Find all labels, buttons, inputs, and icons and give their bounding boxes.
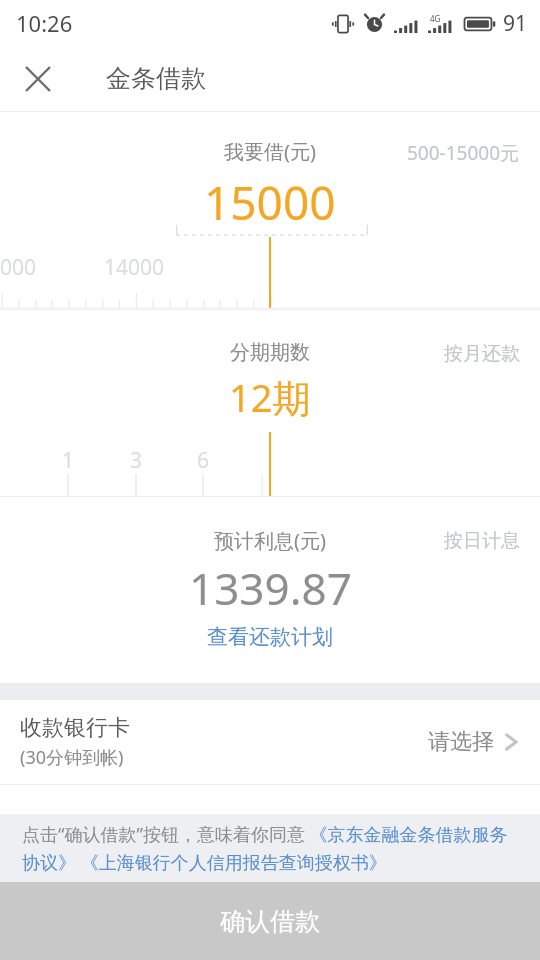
staticText: 12期 [229, 371, 311, 423]
staticText: 点击“确认借款”按钮，意味着你同意 《京东金融金条借款服务协议》 《上海银行个人… [22, 822, 522, 875]
staticText: 按月还款 [444, 342, 520, 366]
staticText: 14000 [104, 253, 165, 282]
button[interactable]: 查看还款计划 [201, 622, 339, 652]
staticText: 1339.87 [189, 558, 352, 618]
staticText: 分期期数 [230, 340, 310, 365]
button[interactable]: 收款银行卡 [0, 700, 540, 784]
staticText: 91 [503, 9, 528, 38]
staticText: (30分钟到帐) [20, 745, 124, 770]
button[interactable]: Close [14, 55, 62, 103]
staticText: 预计利息(元) [214, 527, 326, 554]
staticText: 查看还款计划 [207, 624, 333, 650]
staticText: 我要借(元) [224, 138, 316, 165]
staticText: 确认借款 [220, 906, 320, 937]
staticText: 6 [197, 446, 210, 475]
staticText: 1 [62, 446, 75, 475]
staticText: 按日计息 [444, 529, 520, 553]
staticText: 请选择 [428, 728, 494, 756]
staticText: 收款银行卡 [20, 714, 130, 742]
staticText: 3 [130, 446, 143, 475]
staticText: 10:26 [16, 8, 73, 38]
button[interactable]: 确认借款 [0, 882, 540, 960]
staticText: 4G [430, 13, 441, 24]
staticText: 15000 [204, 171, 336, 234]
staticText: 金条借款 [106, 63, 206, 94]
staticText: 000 [0, 253, 37, 282]
staticText: 500-15000元 [407, 140, 520, 166]
